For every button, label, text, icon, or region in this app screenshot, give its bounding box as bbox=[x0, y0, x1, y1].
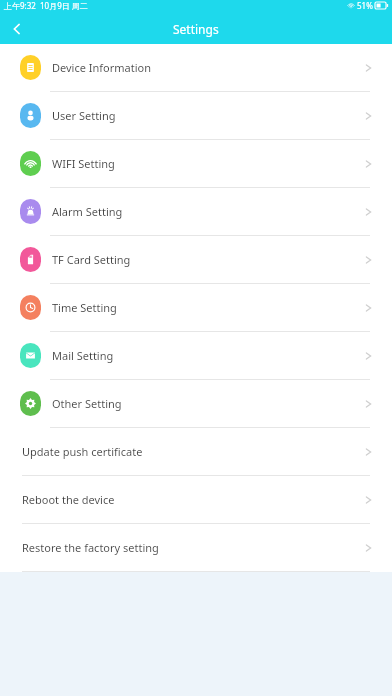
staticText: 上午9:32 10月9日 周二 bbox=[4, 0, 88, 11]
staticText: Restore the factory setting bbox=[22, 540, 159, 555]
staticText: Time Setting bbox=[52, 300, 117, 315]
staticText: 51% bbox=[357, 0, 373, 11]
staticText: Update push certificate bbox=[22, 444, 143, 459]
button[interactable]: Device Information bbox=[0, 44, 392, 92]
staticText: Alarm Setting bbox=[52, 204, 123, 219]
button[interactable]: Reboot the device bbox=[0, 476, 392, 524]
staticText: Device Information bbox=[52, 60, 152, 75]
button[interactable]: Update push certificate bbox=[0, 428, 392, 476]
staticText: TF Card Setting bbox=[52, 252, 131, 267]
staticText: Settings bbox=[173, 21, 219, 37]
button[interactable]: WIFI Setting bbox=[0, 140, 392, 188]
staticText: Mail Setting bbox=[52, 348, 114, 363]
button[interactable]: Back bbox=[0, 14, 34, 44]
button[interactable]: Alarm Setting bbox=[0, 188, 392, 236]
staticText: WIFI Setting bbox=[52, 156, 115, 171]
staticText: User Setting bbox=[52, 108, 116, 123]
button[interactable]: Other Setting bbox=[0, 380, 392, 428]
staticText: Reboot the device bbox=[22, 492, 115, 507]
button[interactable]: Restore the factory setting bbox=[0, 524, 392, 572]
button[interactable]: TF Card Setting bbox=[0, 236, 392, 284]
button[interactable]: Mail Setting bbox=[0, 332, 392, 380]
button[interactable]: Time Setting bbox=[0, 284, 392, 332]
button[interactable]: User Setting bbox=[0, 92, 392, 140]
staticText: Other Setting bbox=[52, 396, 122, 411]
